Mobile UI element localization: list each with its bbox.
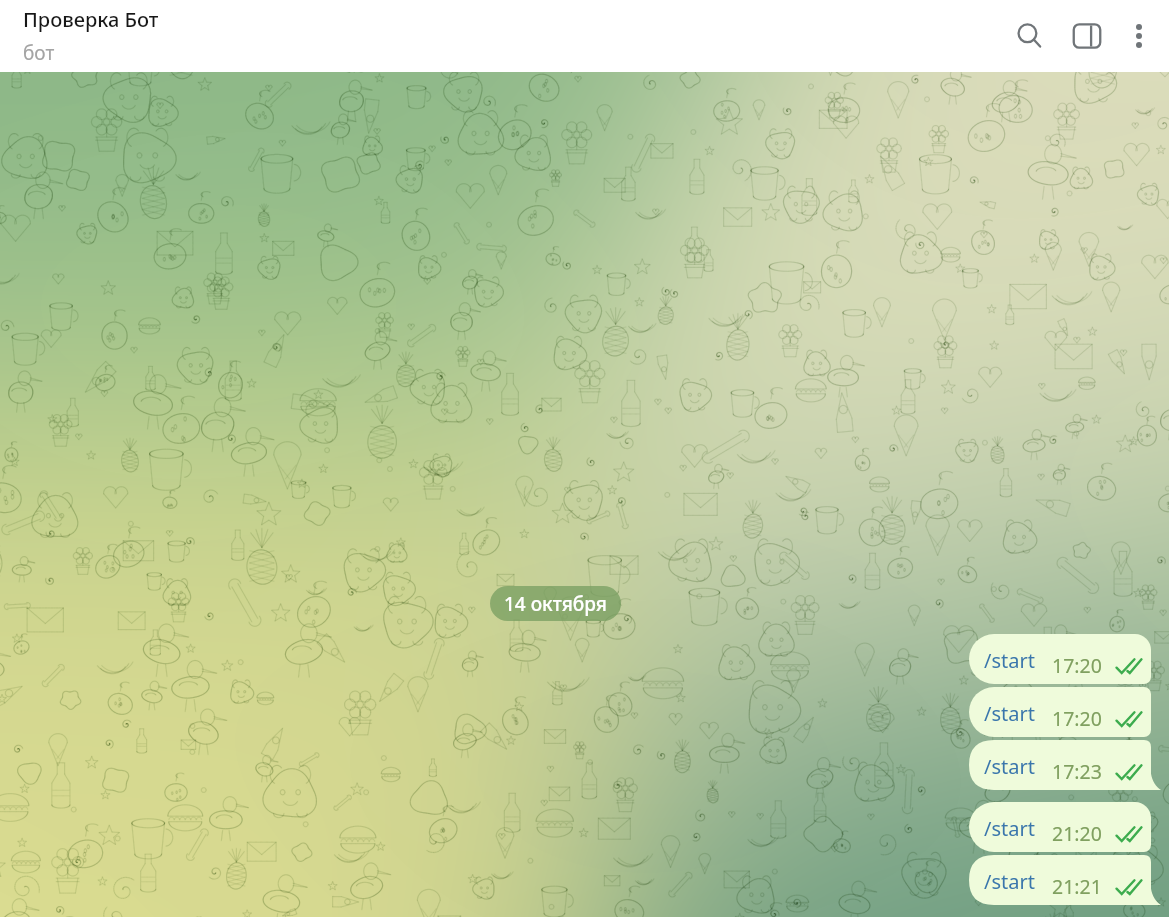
staticText: /start [984,700,1035,727]
button[interactable]: /start [969,740,1161,790]
staticText: /start [984,647,1035,674]
button[interactable]: /start [969,634,1151,684]
button[interactable]: More options [1113,10,1165,62]
button[interactable]: 14 октября [490,586,621,621]
staticText: бот [23,40,55,66]
button[interactable]: Search [999,10,1061,62]
button[interactable]: /start [969,687,1151,737]
staticText: 17:23 [1052,758,1102,785]
staticText: 17:20 [1052,652,1102,679]
staticText: /start [984,868,1035,895]
staticText: 17:20 [1052,705,1102,732]
button[interactable]: /start [969,855,1161,905]
button[interactable]: /start [969,802,1151,852]
staticText: 21:21 [1052,873,1102,900]
staticText: 14 октября [504,591,607,617]
staticText: /start [984,753,1035,780]
button[interactable]: Split view [1061,10,1113,62]
staticText: 21:20 [1052,820,1102,847]
staticText: /start [984,815,1035,842]
staticText: Проверка Бот [23,6,159,33]
